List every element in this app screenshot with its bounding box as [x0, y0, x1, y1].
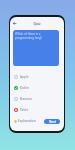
button[interactable]: Back: [11, 20, 18, 27]
staticText: Banana: [20, 97, 32, 101]
button[interactable]: Next: [44, 119, 60, 124]
staticText: Kotlin: [20, 86, 30, 90]
button[interactable]: Table: [10, 104, 64, 115]
button[interactable]: Banana: [10, 93, 64, 104]
staticText: Explanation: [18, 119, 36, 123]
button[interactable]: Apple: [10, 71, 64, 82]
staticText: Table: [20, 108, 29, 112]
staticText: Apple: [20, 75, 29, 79]
button[interactable]: Kotlin: [10, 82, 64, 93]
staticText: Quiz: [33, 21, 41, 25]
staticText: Next: [49, 120, 56, 124]
button[interactable]: Explanation: [14, 118, 36, 124]
staticText: Which of these is a programming lang?: [15, 32, 42, 40]
